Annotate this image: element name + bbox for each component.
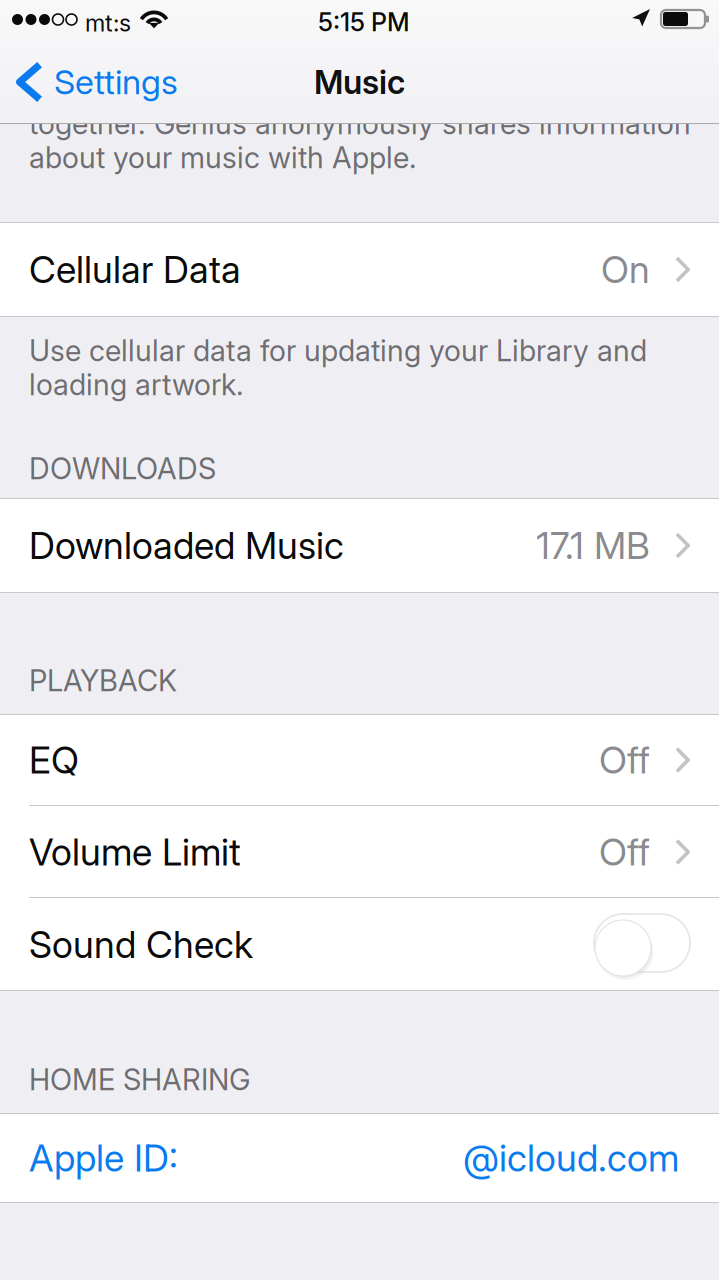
staticText: Settings [54, 61, 178, 102]
staticText: about your music with Apple. [29, 140, 417, 175]
staticText: together. Genius anonymously shares info… [29, 106, 691, 141]
staticText: 5:15 PM [318, 7, 410, 37]
staticText: Volume Limit [29, 830, 241, 874]
button[interactable]: EQ [0, 714, 719, 806]
staticText: PLAYBACK [29, 663, 177, 698]
staticText: HOME SHARING [29, 1062, 250, 1097]
staticText: Music [314, 62, 405, 102]
staticText: Use cellular data for updating your Libr… [29, 333, 647, 368]
button[interactable]: Settings [0, 40, 200, 124]
staticText: @icloud.com [463, 1136, 679, 1180]
staticText: Sound Check [29, 922, 253, 967]
staticText: Downloaded Music [29, 523, 344, 568]
button[interactable]: Sound Check [0, 898, 719, 991]
staticText: mt:s [85, 9, 131, 37]
staticText: DOWNLOADS [29, 451, 216, 486]
staticText: EQ [29, 738, 79, 782]
staticText: Apple ID: [29, 1136, 178, 1180]
button[interactable]: Downloaded Music [0, 498, 719, 593]
staticText: Cellular Data [29, 247, 241, 292]
staticText: Off [599, 738, 650, 782]
staticText: loading artwork. [29, 367, 244, 402]
staticText: 17.1 MB [536, 523, 650, 568]
button[interactable]: Cellular Data [0, 222, 719, 317]
staticText: Off [599, 830, 650, 874]
button[interactable]: Apple ID: [0, 1113, 719, 1203]
staticText: On [601, 247, 650, 292]
button[interactable]: Volume Limit [0, 806, 719, 898]
